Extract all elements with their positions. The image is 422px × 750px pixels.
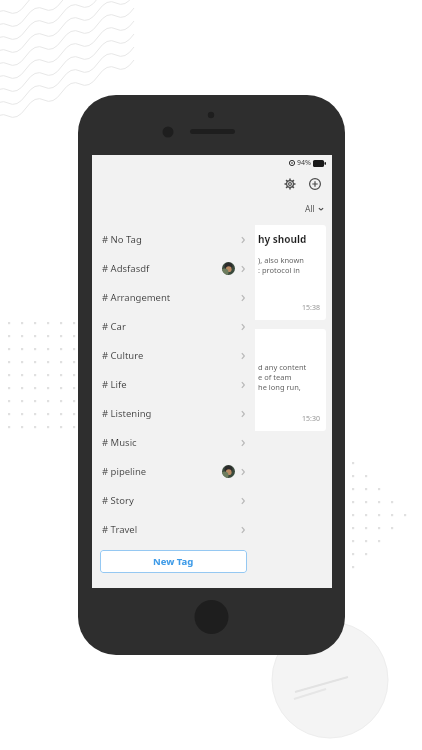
staticText: ), also known (258, 255, 304, 265)
staticText: # Arrangement (102, 291, 171, 304)
staticText: d any content (258, 362, 307, 372)
button[interactable]: # Arrangement (92, 283, 255, 312)
button[interactable]: # Music (92, 428, 255, 457)
button[interactable]: # Travel (92, 515, 255, 544)
button[interactable]: # pipeline (92, 457, 255, 486)
button[interactable]: # No Tag (92, 225, 255, 254)
staticText: # Listening (102, 407, 152, 420)
button[interactable]: All (305, 203, 324, 215)
button[interactable]: # Car (92, 312, 255, 341)
button[interactable]: # Adsfasdf (92, 254, 255, 283)
staticText: # Story (102, 494, 134, 507)
staticText: # Adsfasdf (102, 262, 150, 275)
button[interactable]: hy should (252, 225, 326, 320)
button[interactable]: # Culture (92, 341, 255, 370)
staticText: # Culture (102, 349, 144, 362)
staticText: # pipeline (102, 465, 147, 478)
button[interactable]: Add (306, 175, 324, 193)
staticText: New Tag (153, 555, 194, 568)
staticText: : protocol in (258, 265, 300, 275)
button[interactable]: # Story (92, 486, 255, 515)
staticText: All (305, 203, 315, 215)
staticText: # No Tag (102, 233, 142, 246)
staticText: he long run, (258, 382, 301, 392)
staticText: hy should (258, 232, 307, 246)
staticText: # Life (102, 378, 127, 391)
staticText: # Car (102, 320, 126, 333)
staticText: # Travel (102, 523, 138, 536)
staticText: 15:38 (302, 303, 320, 313)
button[interactable]: # Listening (92, 399, 255, 428)
button[interactable]: d any content (252, 329, 326, 431)
staticText: # Music (102, 436, 137, 449)
button[interactable]: New Tag (100, 550, 247, 573)
button[interactable]: # Life (92, 370, 255, 399)
staticText: e of team (258, 372, 292, 382)
button[interactable]: Settings (281, 175, 299, 193)
staticText: 15:30 (302, 414, 320, 424)
staticText: 94% (297, 158, 311, 168)
